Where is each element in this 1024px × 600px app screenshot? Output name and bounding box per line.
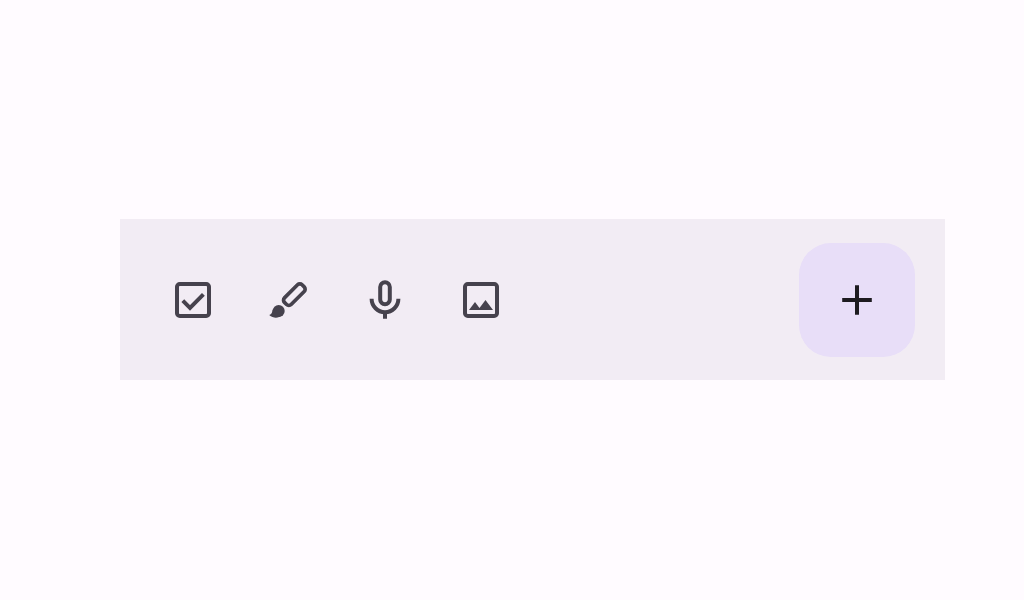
button[interactable]: Voice recording [337,252,433,348]
button[interactable]: Brush [241,252,337,348]
button[interactable]: Create new note [799,243,915,357]
button[interactable]: Image [433,252,529,348]
button[interactable]: Checklist [145,252,241,348]
